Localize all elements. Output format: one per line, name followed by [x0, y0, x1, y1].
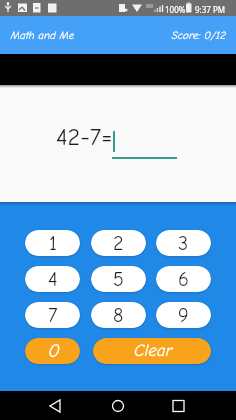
button[interactable]	[157, 391, 236, 420]
button[interactable]	[78, 391, 157, 420]
button[interactable]: 9	[156, 302, 211, 328]
button[interactable]: 0	[25, 338, 80, 364]
staticText: 7	[48, 304, 58, 327]
button[interactable]: 5	[91, 266, 146, 292]
staticText: 3	[178, 232, 189, 255]
staticText: 6	[178, 268, 189, 291]
button[interactable]	[0, 391, 78, 420]
staticText: Clear	[133, 341, 172, 361]
button[interactable]: 4	[25, 266, 80, 292]
button[interactable]: 6	[156, 266, 211, 292]
button[interactable]: 2	[91, 230, 146, 256]
staticText: 100%	[165, 4, 186, 15]
staticText: 9	[178, 304, 189, 327]
staticText: Score: 0/12	[171, 29, 226, 42]
button[interactable]: 8	[91, 302, 146, 328]
button[interactable]: Clear	[93, 338, 211, 364]
staticText: 4	[48, 268, 58, 291]
button[interactable]: 7	[25, 302, 80, 328]
button[interactable]: 3	[156, 230, 211, 256]
staticText: 0	[47, 340, 59, 362]
button[interactable]: 1	[25, 230, 80, 256]
staticText: 1	[49, 232, 57, 255]
staticText: 2	[113, 232, 124, 255]
staticText: 5	[113, 268, 124, 291]
staticText: Math and Me	[10, 29, 74, 42]
staticText: 42-7=	[56, 123, 113, 151]
staticText: 9:37 PM	[195, 4, 226, 15]
staticText: 8	[113, 304, 124, 327]
